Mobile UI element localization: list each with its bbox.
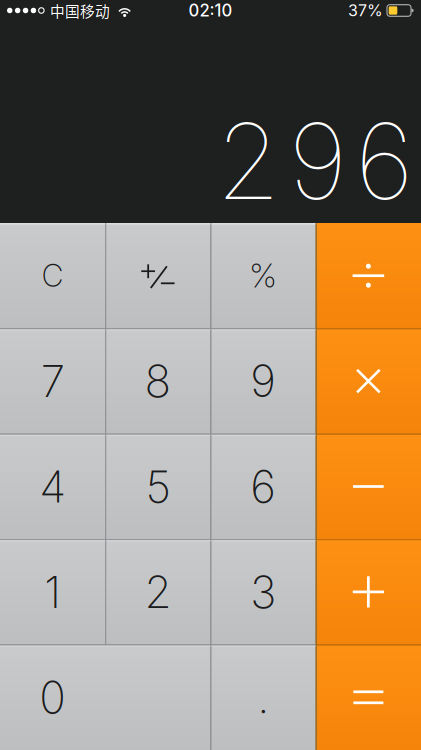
- button[interactable]: 0: [0, 645, 210, 750]
- button[interactable]: Subtract: [316, 434, 421, 539]
- button[interactable]: 9: [210, 328, 316, 434]
- button[interactable]: 2: [105, 539, 210, 645]
- staticText: 2: [144, 565, 171, 618]
- staticText: 8: [144, 354, 171, 408]
- staticText: 1: [44, 565, 61, 618]
- button[interactable]: .: [210, 645, 316, 750]
- button[interactable]: Equals: [316, 645, 421, 750]
- staticText: %: [249, 256, 277, 295]
- button[interactable]: 6: [210, 434, 316, 539]
- button[interactable]: Divide: [316, 223, 421, 328]
- button[interactable]: Multiply: [316, 328, 421, 434]
- button[interactable]: C: [0, 223, 105, 328]
- button[interactable]: %: [210, 223, 316, 328]
- button[interactable]: 7: [0, 328, 105, 434]
- staticText: 02:10: [188, 0, 232, 21]
- staticText: 9: [288, 98, 347, 224]
- button[interactable]: Add: [316, 539, 421, 645]
- staticText: 6: [250, 460, 276, 513]
- button[interactable]: 5: [105, 434, 210, 539]
- staticText: 37%: [348, 1, 383, 20]
- staticText: 7: [41, 354, 65, 408]
- staticText: 9: [250, 354, 276, 408]
- button[interactable]: 4: [0, 434, 105, 539]
- staticText: 中国移动: [50, 0, 110, 21]
- staticText: .: [257, 671, 269, 724]
- staticText: 4: [39, 460, 66, 513]
- staticText: 5: [145, 460, 170, 513]
- staticText: 3: [250, 565, 276, 618]
- staticText: 6: [355, 98, 414, 224]
- button[interactable]: 1: [0, 539, 105, 645]
- staticText: 2: [216, 98, 281, 224]
- button[interactable]: 8: [105, 328, 210, 434]
- staticText: C: [42, 257, 64, 294]
- button[interactable]: Toggle sign: [105, 223, 210, 328]
- button[interactable]: 3: [210, 539, 316, 645]
- staticText: 0: [39, 671, 66, 724]
